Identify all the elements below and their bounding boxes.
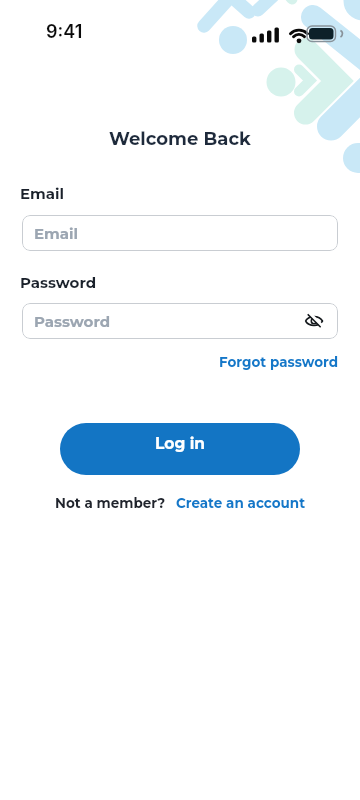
staticText: Forgot password [219,354,339,370]
staticText: 9:41 [46,21,83,43]
button[interactable]: Email [22,215,338,251]
staticText: Create an account [176,495,306,511]
staticText: Password [34,312,111,330]
button[interactable]: Create an account [176,495,306,511]
button[interactable]: Forgot password [217,352,341,372]
button[interactable] [303,310,325,332]
staticText: Log in [155,434,206,453]
staticText: Password [20,273,97,291]
staticText: Welcome Back [109,128,251,150]
staticText: Not a member? [55,495,166,511]
button[interactable]: Log in [60,423,300,475]
button[interactable]: Password [22,303,338,339]
staticText: Email [34,224,79,242]
staticText: Email [20,184,65,202]
